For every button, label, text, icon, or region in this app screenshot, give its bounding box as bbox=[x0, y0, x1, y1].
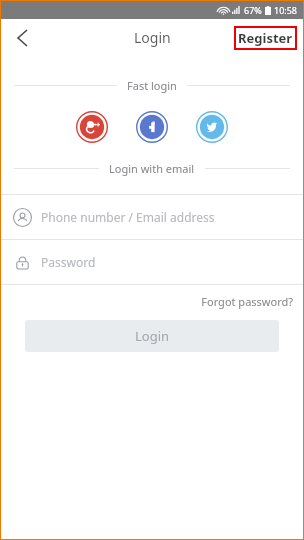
staticText: Password bbox=[41, 254, 96, 270]
staticText: Login with email bbox=[109, 161, 195, 176]
button[interactable]: Back bbox=[0, 19, 44, 56]
button[interactable]: Password bbox=[0, 240, 304, 284]
staticText: 67% bbox=[244, 4, 262, 16]
button[interactable]: Sign in with Twitter bbox=[196, 111, 228, 143]
staticText: Register bbox=[238, 29, 293, 47]
staticText: Fast login bbox=[127, 78, 177, 93]
button[interactable]: Phone number / Email address bbox=[0, 195, 304, 239]
button[interactable]: Forgot password? bbox=[199, 292, 295, 311]
staticText: Phone number / Email address bbox=[41, 209, 215, 225]
staticText: Login bbox=[134, 28, 171, 47]
staticText: 10:58 bbox=[274, 4, 298, 16]
staticText: Login bbox=[135, 327, 170, 345]
button[interactable]: Sign in with Facebook bbox=[136, 111, 168, 143]
button[interactable]: Register bbox=[234, 26, 297, 50]
staticText: Forgot password? bbox=[201, 294, 293, 309]
button[interactable]: Login bbox=[25, 320, 279, 352]
button[interactable]: Sign in with Google bbox=[76, 111, 108, 143]
